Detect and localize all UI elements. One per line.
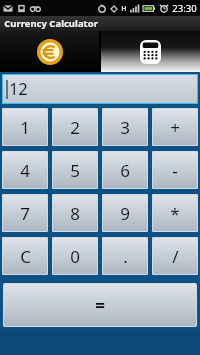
button[interactable]: - [153, 152, 197, 188]
staticText: . [123, 245, 128, 268]
staticText: 2 [70, 116, 80, 139]
staticText: 12 [9, 78, 28, 100]
button[interactable]: 1 [3, 109, 47, 145]
button[interactable]: Calculator tab [101, 31, 200, 72]
staticText: + [170, 116, 180, 139]
button[interactable]: 3 [103, 109, 147, 145]
button[interactable]: 9 [103, 195, 147, 231]
button[interactable]: 5 [53, 152, 97, 188]
staticText: 5 [70, 159, 80, 182]
staticText: - [172, 159, 178, 182]
staticText: 6 [120, 159, 130, 182]
staticText: 0 [70, 245, 80, 268]
button[interactable]: 6 [103, 152, 147, 188]
staticText: 7 [20, 202, 30, 225]
staticText: Currency Calculator [4, 17, 98, 30]
button[interactable]: . [103, 238, 147, 274]
staticText: * [170, 202, 180, 225]
button[interactable]: C [3, 238, 47, 274]
button[interactable]: Currency converter tab [0, 31, 99, 72]
button[interactable]: / [153, 238, 197, 274]
staticText: 1 [20, 116, 30, 139]
button[interactable]: + [153, 109, 197, 145]
staticText: 3 [120, 116, 130, 139]
staticText: 23:30 [172, 2, 197, 15]
staticText: / [172, 245, 179, 268]
button[interactable]: 0 [53, 238, 97, 274]
button[interactable]: * [153, 195, 197, 231]
staticText: 8 [70, 202, 80, 225]
staticText: H [121, 4, 127, 14]
staticText: 4 [20, 159, 30, 182]
staticText: 9 [120, 202, 130, 225]
button[interactable]: Currency Calculator [0, 16, 200, 31]
button[interactable]: 7 [3, 195, 47, 231]
button[interactable]: 4 [3, 152, 47, 188]
button[interactable]: = [4, 284, 196, 326]
staticText: C [20, 245, 31, 268]
button[interactable]: 8 [53, 195, 97, 231]
button[interactable]: Calculator display [3, 75, 197, 103]
button[interactable]: 2 [53, 109, 97, 145]
staticText: = [95, 294, 105, 317]
